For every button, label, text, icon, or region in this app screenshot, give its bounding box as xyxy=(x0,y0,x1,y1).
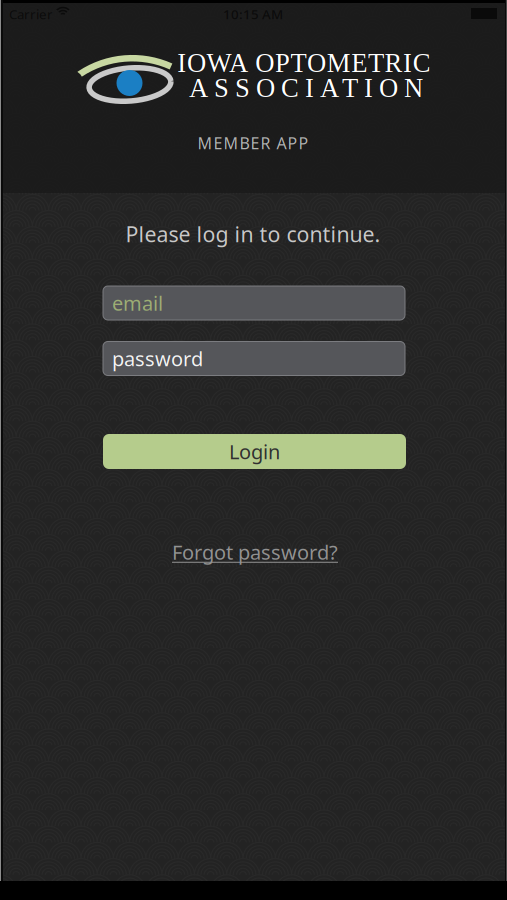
staticText: Forgot password? xyxy=(172,539,338,565)
staticText: password xyxy=(112,345,203,372)
staticText: email xyxy=(112,290,163,316)
button[interactable]: Login xyxy=(103,434,406,469)
staticText: MEMBER APP xyxy=(197,132,308,154)
staticText: IOWA OPTOMETRIC xyxy=(177,48,431,78)
button[interactable]: password xyxy=(103,341,405,375)
staticText: Carrier xyxy=(9,5,53,23)
button[interactable]: email xyxy=(103,286,405,320)
staticText: ASSOCIATION xyxy=(189,73,423,103)
staticText: Login xyxy=(229,438,280,465)
button[interactable]: Forgot password? xyxy=(172,539,338,565)
staticText: Please log in to continue. xyxy=(125,220,380,248)
staticText: 10:15 AM xyxy=(223,5,283,23)
